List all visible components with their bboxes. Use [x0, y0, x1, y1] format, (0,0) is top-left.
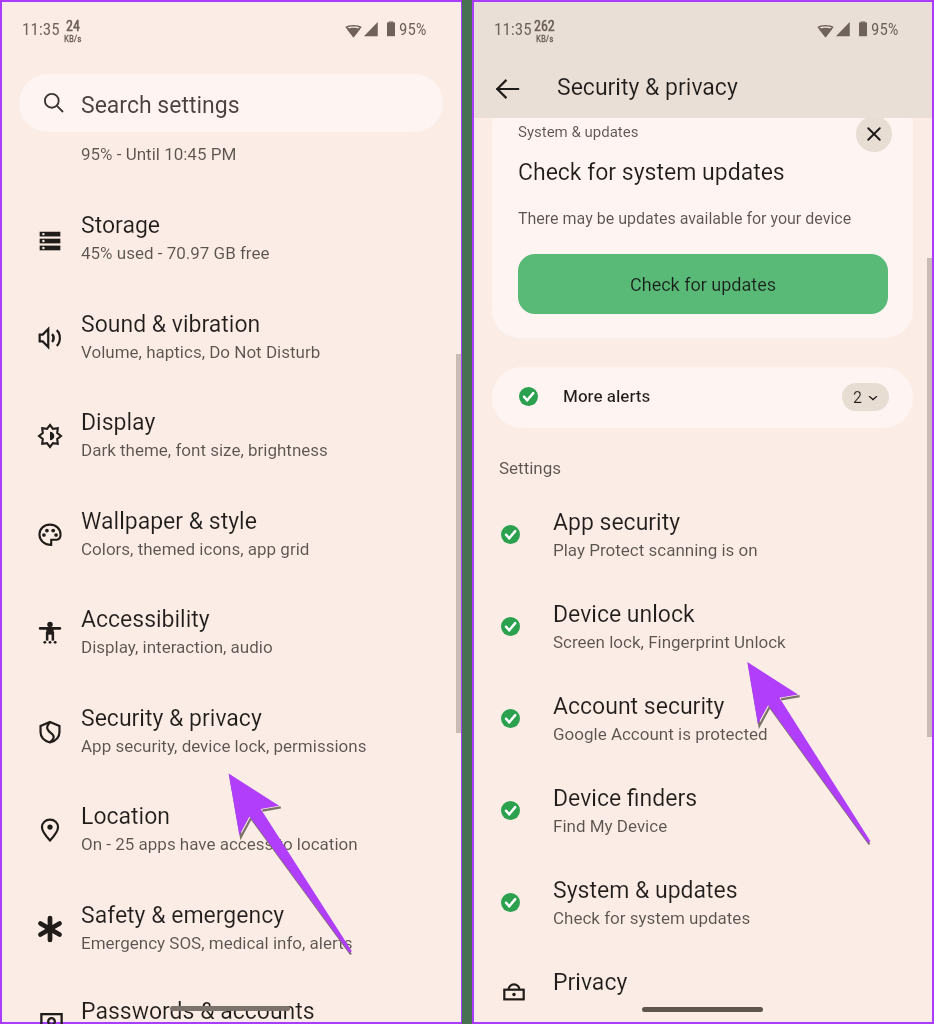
staticText: 262	[534, 18, 555, 34]
staticText: 95%	[399, 19, 427, 39]
button[interactable]: Device finders	[474, 761, 932, 853]
staticText: 45% used - 70.97 GB free	[81, 243, 270, 263]
staticText: Check for system updates	[553, 908, 751, 928]
button[interactable]: Back	[480, 61, 536, 117]
staticText: 95% - Until 10:45 PM	[81, 144, 237, 164]
staticText: Volume, haptics, Do Not Disturb	[81, 342, 321, 362]
button[interactable]: Check for updates	[518, 254, 888, 314]
staticText: Location	[81, 803, 170, 830]
staticText: Emergency SOS, medical info, alerts	[81, 933, 353, 953]
staticText: Wallpaper & style	[81, 508, 257, 535]
staticText: Sound & vibration	[81, 311, 261, 338]
staticText: 11:35	[494, 19, 532, 39]
button[interactable]: Storage	[2, 188, 461, 286]
staticText: Display	[81, 409, 156, 436]
staticText: Google Account is protected	[553, 724, 768, 744]
staticText: 2	[853, 388, 862, 407]
staticText: Dark theme, font size, brightness	[81, 440, 328, 460]
staticText: System & updates	[518, 123, 639, 141]
staticText: There may be updates available for your …	[518, 209, 852, 228]
staticText: Privacy	[553, 969, 628, 996]
button[interactable]: Dismiss	[856, 116, 892, 152]
staticText: 95%	[871, 19, 899, 39]
button[interactable]: Wallpaper & style	[2, 484, 461, 582]
button[interactable]: Passwords & accounts	[2, 998, 461, 1022]
staticText: Security & privacy	[81, 705, 262, 732]
staticText: 11:35	[22, 19, 60, 39]
staticText: 24	[66, 18, 80, 34]
staticText: KB/s	[64, 34, 82, 45]
button[interactable]: Sound & vibration	[2, 287, 461, 385]
staticText: Account security	[553, 693, 725, 720]
staticText: Settings	[499, 458, 562, 478]
button[interactable]: Security & privacy	[2, 681, 461, 779]
staticText: Check for system updates	[518, 159, 785, 186]
button[interactable]: Device unlock	[474, 577, 932, 669]
button[interactable]: Account security	[474, 669, 932, 761]
staticText: Colors, themed icons, app grid	[81, 539, 310, 559]
button[interactable]: App security	[474, 485, 932, 577]
staticText: Storage	[81, 212, 161, 239]
button[interactable]: More alerts	[492, 367, 913, 428]
button[interactable]: Safety & emergency	[2, 878, 461, 976]
staticText: Safety & emergency	[81, 902, 285, 929]
button[interactable]: Privacy	[474, 969, 932, 999]
staticText: Search settings	[81, 92, 240, 119]
staticText: Screen lock, Fingerprint Unlock	[553, 632, 786, 652]
button[interactable]: Search settings	[19, 74, 443, 132]
staticText: On - 25 apps have access to location	[81, 834, 358, 854]
staticText: More alerts	[563, 386, 651, 406]
staticText: Passwords & accounts	[81, 998, 315, 1022]
staticText: Device unlock	[553, 601, 695, 628]
staticText: Display, interaction, audio	[81, 637, 273, 657]
staticText: KB/s	[536, 34, 554, 45]
button[interactable]: Expand	[842, 383, 889, 411]
button[interactable]: Display	[2, 385, 461, 483]
button[interactable]: Accessibility	[2, 582, 461, 680]
staticText: Accessibility	[81, 606, 210, 633]
staticText: App security	[553, 509, 681, 536]
button[interactable]: Location	[2, 779, 461, 877]
staticText: Find My Device	[553, 816, 668, 836]
staticText: System & updates	[553, 877, 738, 904]
staticText: App security, device lock, permissions	[81, 736, 367, 756]
staticText: Device finders	[553, 785, 698, 812]
button[interactable]: System & updates	[474, 853, 932, 945]
staticText: Play Protect scanning is on	[553, 540, 758, 560]
staticText: Check for updates	[630, 274, 776, 295]
staticText: Security & privacy	[557, 74, 738, 101]
